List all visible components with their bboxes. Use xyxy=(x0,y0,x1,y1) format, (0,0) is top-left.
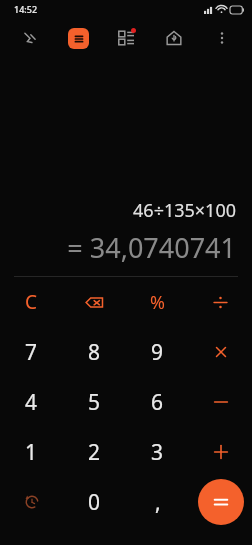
staticText: 46÷135×100 xyxy=(16,198,236,223)
staticText: 8 xyxy=(88,338,101,367)
button[interactable]: 0 xyxy=(63,477,126,527)
button[interactable]: Scientific mode xyxy=(6,18,54,58)
button[interactable]: Backspace xyxy=(63,277,126,327)
staticText: 7 xyxy=(25,338,38,367)
button[interactable]: Divide xyxy=(189,277,252,327)
button[interactable]: % xyxy=(126,277,189,327)
staticText: = 34,0740741 xyxy=(16,229,236,266)
button[interactable]: Converter xyxy=(102,18,150,58)
staticText: 9 xyxy=(151,338,164,367)
button[interactable]: 4 xyxy=(0,377,63,427)
staticText: 5 xyxy=(88,388,101,417)
button[interactable]: 8 xyxy=(63,327,126,377)
button[interactable]: Mortgage xyxy=(150,18,198,58)
button[interactable]: 2 xyxy=(63,427,126,477)
staticText: 2 xyxy=(88,438,101,467)
staticText: 6 xyxy=(151,388,164,417)
button[interactable]: 3 xyxy=(126,427,189,477)
button[interactable]: History xyxy=(0,477,63,527)
staticText: 14:52 xyxy=(14,3,38,15)
staticText: , xyxy=(155,488,161,517)
staticText: % xyxy=(150,290,165,315)
staticText: 0 xyxy=(88,488,101,517)
staticText: 4 xyxy=(25,388,38,417)
button[interactable]: More options xyxy=(198,18,246,58)
button[interactable]: 7 xyxy=(0,327,63,377)
button[interactable]: C xyxy=(0,277,63,327)
button[interactable]: 6 xyxy=(126,377,189,427)
staticText: C xyxy=(25,289,38,315)
button[interactable]: 9 xyxy=(126,327,189,377)
button[interactable]: 5 xyxy=(63,377,126,427)
button[interactable]: 1 xyxy=(0,427,63,477)
button[interactable]: Plus xyxy=(189,427,252,477)
button[interactable]: , xyxy=(126,477,189,527)
button[interactable]: Minus xyxy=(189,377,252,427)
button[interactable]: Calculator xyxy=(54,18,102,58)
staticText: 1 xyxy=(25,438,38,467)
button[interactable]: Equals xyxy=(198,479,244,525)
button[interactable]: Multiply xyxy=(189,327,252,377)
staticText: 3 xyxy=(151,438,164,467)
